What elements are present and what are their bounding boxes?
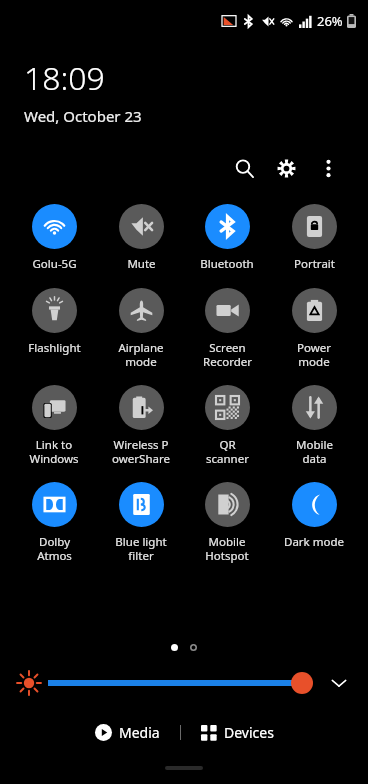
button[interactable]: Search	[224, 148, 264, 188]
button[interactable]: Link to Windows	[14, 383, 94, 468]
staticText: Portrait	[294, 256, 335, 272]
button[interactable]: Golu-5G	[14, 202, 94, 274]
staticText: Wed, October 23	[24, 106, 142, 126]
staticText: Media	[119, 723, 160, 742]
staticText: 18:09	[24, 56, 105, 100]
staticText: Power mode	[297, 340, 331, 369]
button[interactable]: Screen Recorder	[187, 286, 267, 371]
button[interactable]: Power mode	[274, 286, 354, 371]
staticText: 26%	[317, 12, 343, 30]
staticText: Devices	[224, 723, 274, 742]
staticText: Golu-5G	[32, 256, 77, 272]
button[interactable]: More options	[308, 148, 348, 188]
button[interactable]	[48, 668, 314, 698]
button[interactable]: Devices	[195, 717, 280, 748]
staticText: Flashlight	[28, 340, 81, 356]
button[interactable]: Mute	[101, 202, 181, 274]
staticText: Wireless P owerShare	[112, 437, 170, 466]
staticText: Dolby Atmos	[37, 534, 72, 563]
button[interactable]: Blue light filter	[101, 480, 181, 565]
button[interactable]: Bluetooth	[187, 202, 267, 274]
button[interactable]: Expand brightness options	[322, 666, 356, 700]
button[interactable]: Mobile Hotspot	[187, 480, 267, 565]
staticText: Mobile Hotspot	[205, 534, 249, 563]
button[interactable]: Media	[89, 717, 166, 748]
button[interactable]: Flashlight	[14, 286, 94, 358]
staticText: QR scanner	[206, 437, 249, 466]
staticText: Bluetooth	[200, 256, 254, 272]
staticText: Link to Windows	[29, 437, 79, 466]
staticText: Blue light filter	[115, 534, 167, 563]
staticText: Mobile data	[296, 437, 333, 466]
button[interactable]: Wireless P owerShare	[101, 383, 181, 468]
button[interactable]: Mobile data	[274, 383, 354, 468]
staticText: Dark mode	[284, 534, 344, 550]
staticText: Mute	[127, 256, 156, 272]
button[interactable]: Dark mode	[274, 480, 354, 552]
button[interactable]: Settings	[266, 148, 306, 188]
staticText: Screen Recorder	[203, 340, 252, 369]
button[interactable]: Airplane mode	[101, 286, 181, 371]
staticText: Airplane mode	[118, 340, 164, 369]
button[interactable]: Dolby Atmos	[14, 480, 94, 565]
button[interactable]: Portrait	[274, 202, 354, 274]
button[interactable]: QR scanner	[187, 383, 267, 468]
